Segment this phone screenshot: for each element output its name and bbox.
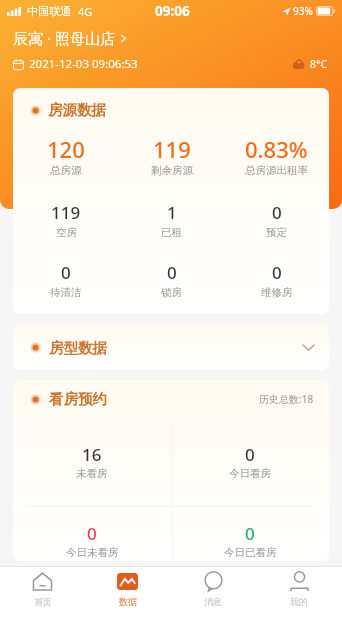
staticText: 0	[61, 261, 71, 284]
staticText: 1	[167, 201, 177, 224]
button[interactable]: 辰寓 · 照母山店	[13, 28, 127, 48]
staticText: 今日已看房	[224, 546, 277, 559]
staticText: 剩余房源	[151, 164, 193, 177]
button[interactable]: 消息	[170, 567, 256, 618]
staticText: 16	[82, 443, 102, 466]
staticText: 我的	[290, 596, 308, 607]
staticText: 119	[153, 134, 191, 164]
staticText: 今日未看房	[66, 546, 119, 559]
button[interactable]: 房型数据	[13, 325, 329, 370]
staticText: 8°C	[310, 57, 328, 71]
staticText: 维修房	[261, 286, 293, 299]
staticText: 93%	[293, 4, 313, 18]
staticText: 0	[87, 522, 97, 545]
staticText: 消息	[204, 596, 222, 607]
staticText: 0	[245, 443, 255, 466]
staticText: 房型数据	[49, 339, 107, 357]
staticText: 2021-12-03 09:06:53	[29, 56, 138, 72]
staticText: 首页	[34, 596, 52, 607]
staticText: 4G	[78, 4, 93, 19]
staticText: 看房预约	[49, 390, 107, 408]
staticText: 预定	[266, 226, 287, 239]
staticText: 房源数据	[48, 101, 106, 119]
staticText: 119	[51, 201, 81, 224]
staticText: 数据	[119, 596, 137, 607]
button[interactable]: 数据	[85, 567, 170, 618]
staticText: 总房源出租率	[245, 164, 308, 177]
button[interactable]: 首页	[0, 567, 85, 618]
staticText: 0	[272, 201, 282, 224]
staticText: 总房源	[50, 164, 82, 177]
staticText: 0	[167, 261, 177, 284]
staticText: 已租	[161, 226, 182, 239]
staticText: 锁房	[161, 286, 182, 299]
staticText: 0	[245, 522, 255, 545]
staticText: 09:06	[155, 2, 190, 20]
button[interactable]: 我的	[256, 567, 342, 618]
staticText: 0	[272, 261, 282, 284]
staticText: 中国联通	[27, 4, 71, 18]
staticText: 今日看房	[229, 467, 271, 480]
staticText: 辰寓 · 照母山店	[13, 28, 115, 48]
staticText: 空房	[56, 226, 77, 239]
staticText: 0.83%	[245, 134, 308, 164]
staticText: 120	[47, 134, 85, 164]
staticText: 未看房	[76, 467, 108, 480]
staticText: 待清洁	[50, 286, 82, 299]
staticText: 历史总数:18	[259, 392, 314, 406]
